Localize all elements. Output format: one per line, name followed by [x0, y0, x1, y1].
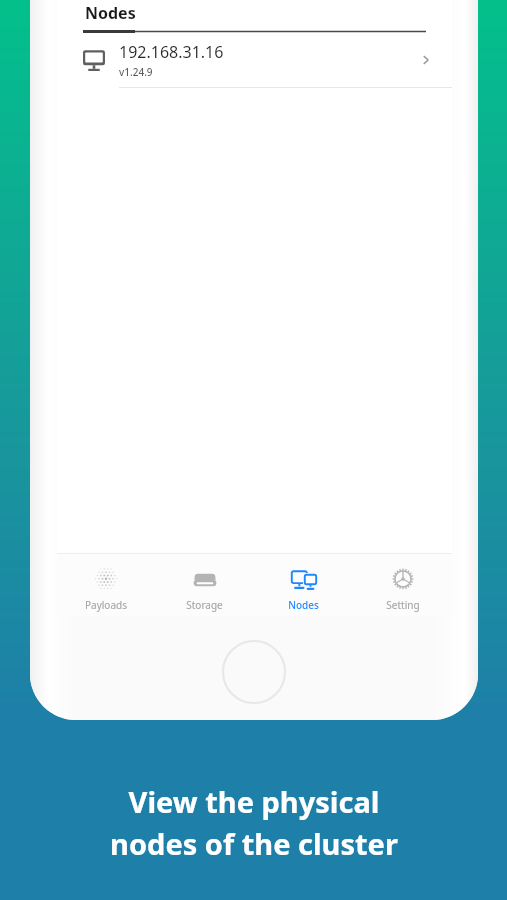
button[interactable]: 192.168.31.16	[57, 33, 452, 88]
staticText: Setting	[386, 598, 420, 612]
staticText: 192.168.31.16	[119, 41, 224, 63]
button[interactable]: Home	[222, 640, 286, 704]
staticText: v1.24.9	[119, 65, 153, 79]
staticText: Nodes	[85, 2, 136, 24]
button[interactable]: Storage	[155, 559, 254, 612]
staticText: Payloads	[85, 598, 127, 612]
staticText: Storage	[186, 598, 223, 612]
button[interactable]: Payloads	[57, 559, 155, 612]
button[interactable]: Setting	[353, 559, 452, 612]
staticText: View the physical nodes of the cluster	[110, 782, 398, 863]
staticText: Nodes	[288, 598, 319, 612]
button[interactable]: Nodes	[254, 559, 353, 612]
